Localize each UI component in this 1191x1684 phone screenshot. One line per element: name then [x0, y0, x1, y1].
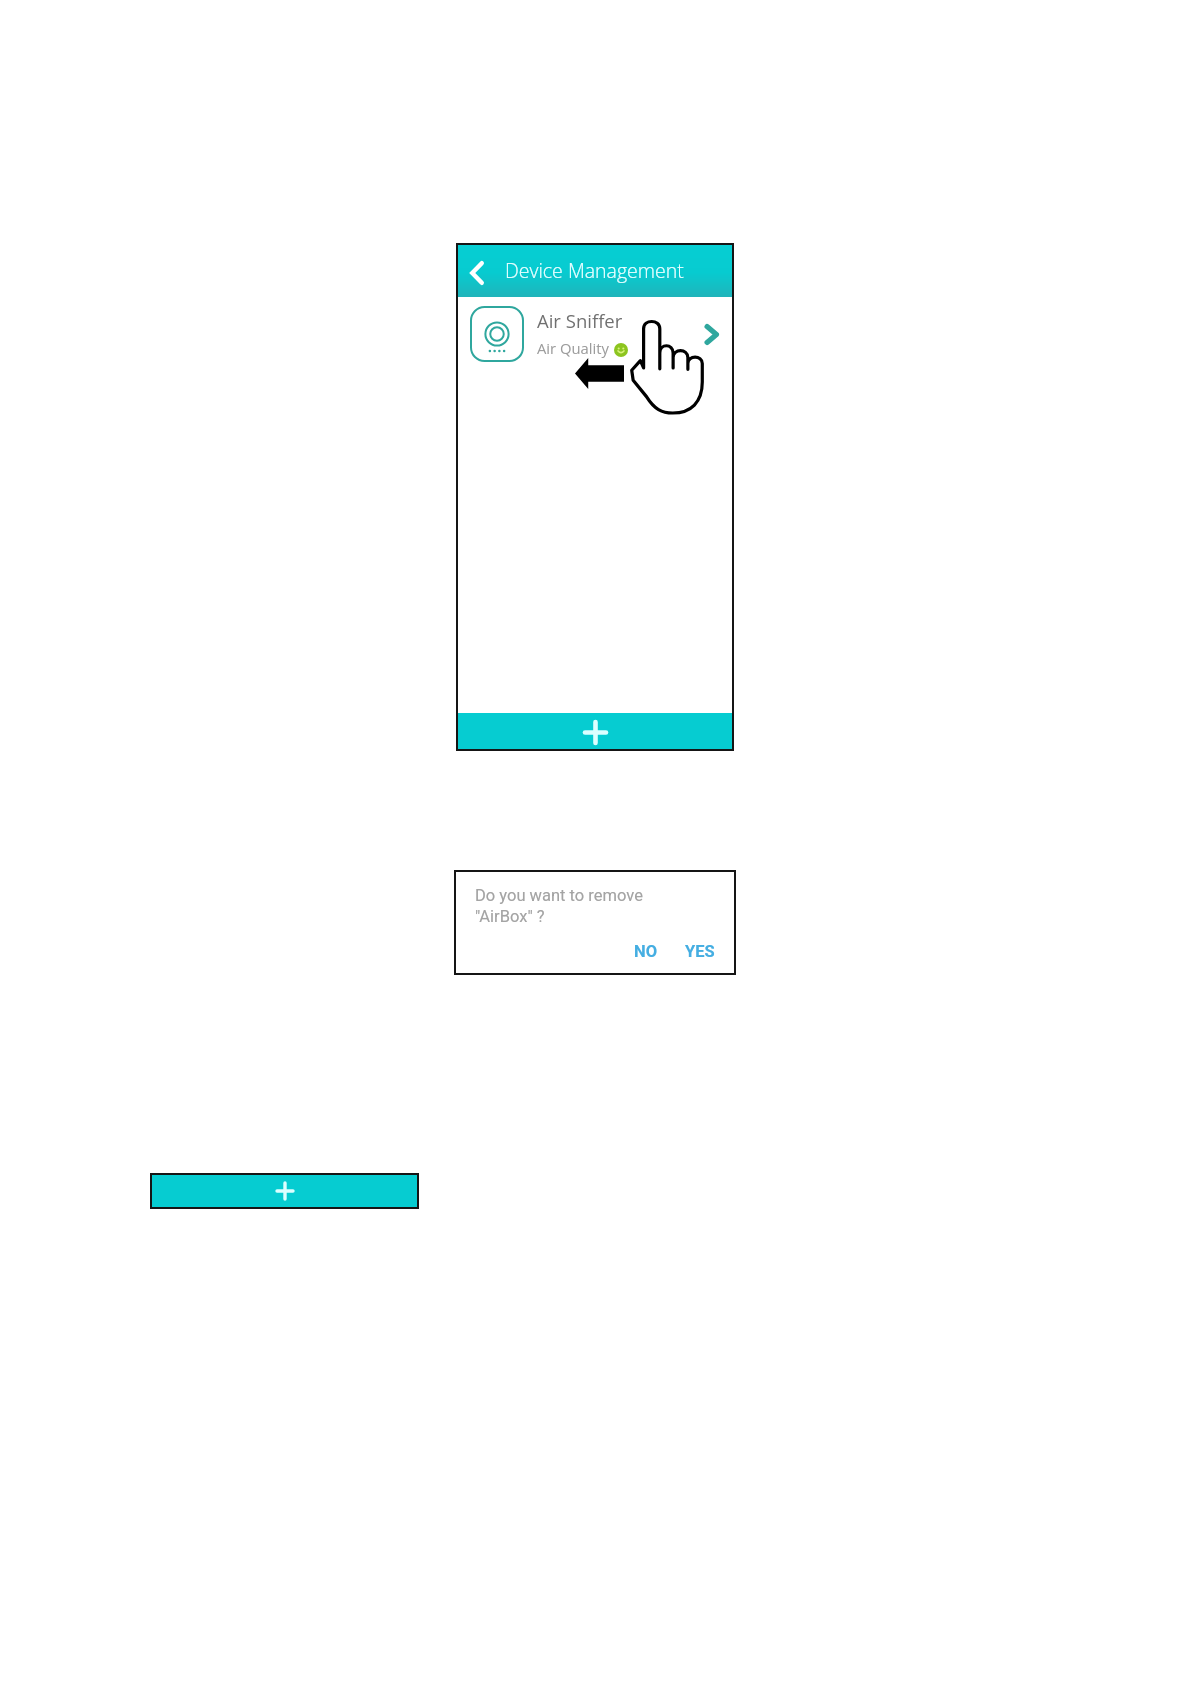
button[interactable]: YES [675, 936, 724, 966]
staticText: Do you want to remove [475, 886, 643, 905]
button[interactable]: Air Sniffer [456, 297, 734, 374]
button[interactable]: Open device details [697, 317, 725, 351]
button[interactable]: Back [464, 258, 490, 288]
button[interactable]: Add device [456, 713, 734, 751]
staticText: "AirBox" ? [475, 907, 545, 926]
staticText: Air Quality [537, 338, 609, 358]
staticText: NO [634, 942, 658, 961]
button[interactable]: NO [624, 936, 667, 966]
staticText: Device Management [505, 257, 684, 284]
button[interactable]: Back [456, 243, 734, 297]
staticText: YES [685, 942, 715, 961]
staticText: Air Sniffer [537, 308, 623, 333]
button[interactable]: Add [150, 1173, 419, 1209]
